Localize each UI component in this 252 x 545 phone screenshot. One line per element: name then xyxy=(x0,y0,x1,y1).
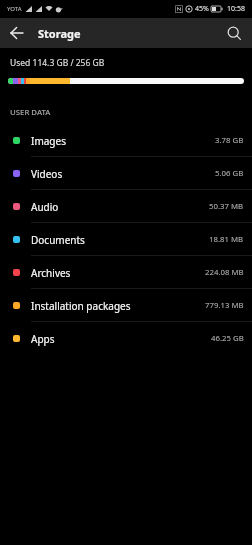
staticText: 5.06 GB xyxy=(215,168,244,179)
staticText: Installation packages xyxy=(31,299,131,313)
staticText: Storage xyxy=(38,26,81,41)
button[interactable]: Archives xyxy=(0,256,252,289)
staticText: Documents xyxy=(31,233,85,247)
button[interactable]: Audio xyxy=(0,190,252,223)
button[interactable]: Apps xyxy=(0,322,252,355)
staticText: Apps xyxy=(31,332,55,346)
staticText: 50.37 MB xyxy=(209,201,244,212)
button[interactable]: Installation packages xyxy=(0,289,252,322)
staticText: YOTA xyxy=(7,5,22,13)
staticText: 10:58 xyxy=(227,4,245,14)
button[interactable]: Images xyxy=(0,124,252,157)
staticText: Videos xyxy=(31,167,63,181)
button[interactable]: Videos xyxy=(0,157,252,190)
staticText: Audio xyxy=(31,200,59,214)
button[interactable] xyxy=(0,18,34,48)
staticText: Archives xyxy=(31,266,71,280)
staticText: Used 114.3 GB / 256 GB xyxy=(10,57,105,69)
staticText: 18.81 MB xyxy=(209,234,244,245)
staticText: Images xyxy=(31,134,66,148)
staticText: 46.25 GB xyxy=(211,333,244,344)
staticText: 779.13 MB xyxy=(205,300,244,311)
button[interactable] xyxy=(216,18,252,48)
button[interactable]: Documents xyxy=(0,223,252,256)
staticText: 45% xyxy=(195,4,209,14)
staticText: USER DATA xyxy=(10,107,51,118)
staticText: 224.08 MB xyxy=(205,267,244,278)
staticText: 3.78 GB xyxy=(215,135,244,146)
